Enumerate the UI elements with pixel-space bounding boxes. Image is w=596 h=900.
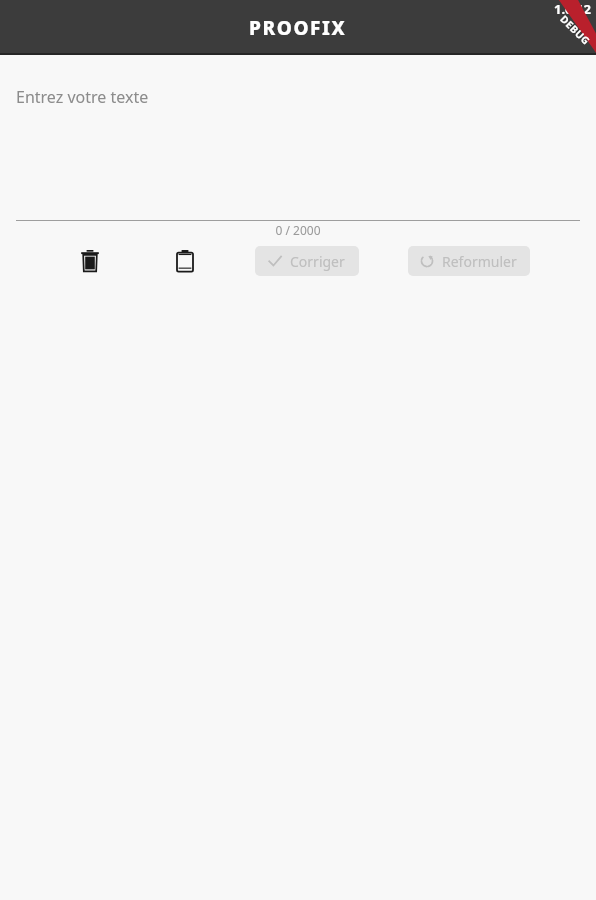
button[interactable]: Effacer: [68, 244, 112, 278]
button[interactable]: Reformuler: [408, 246, 530, 276]
staticText: 0 / 2000: [275, 222, 321, 238]
button[interactable]: Corriger: [255, 246, 359, 276]
staticText: Reformuler: [442, 252, 517, 271]
button[interactable]: Coller: [163, 244, 207, 278]
staticText: Entrez votre texte: [16, 86, 149, 108]
button[interactable]: Entrez votre texte: [0, 76, 596, 220]
staticText: DEBUG: [557, 12, 594, 48]
staticText: Corriger: [290, 252, 345, 271]
staticText: 1.0.12: [554, 0, 592, 18]
staticText: PROOFIX: [249, 15, 347, 41]
